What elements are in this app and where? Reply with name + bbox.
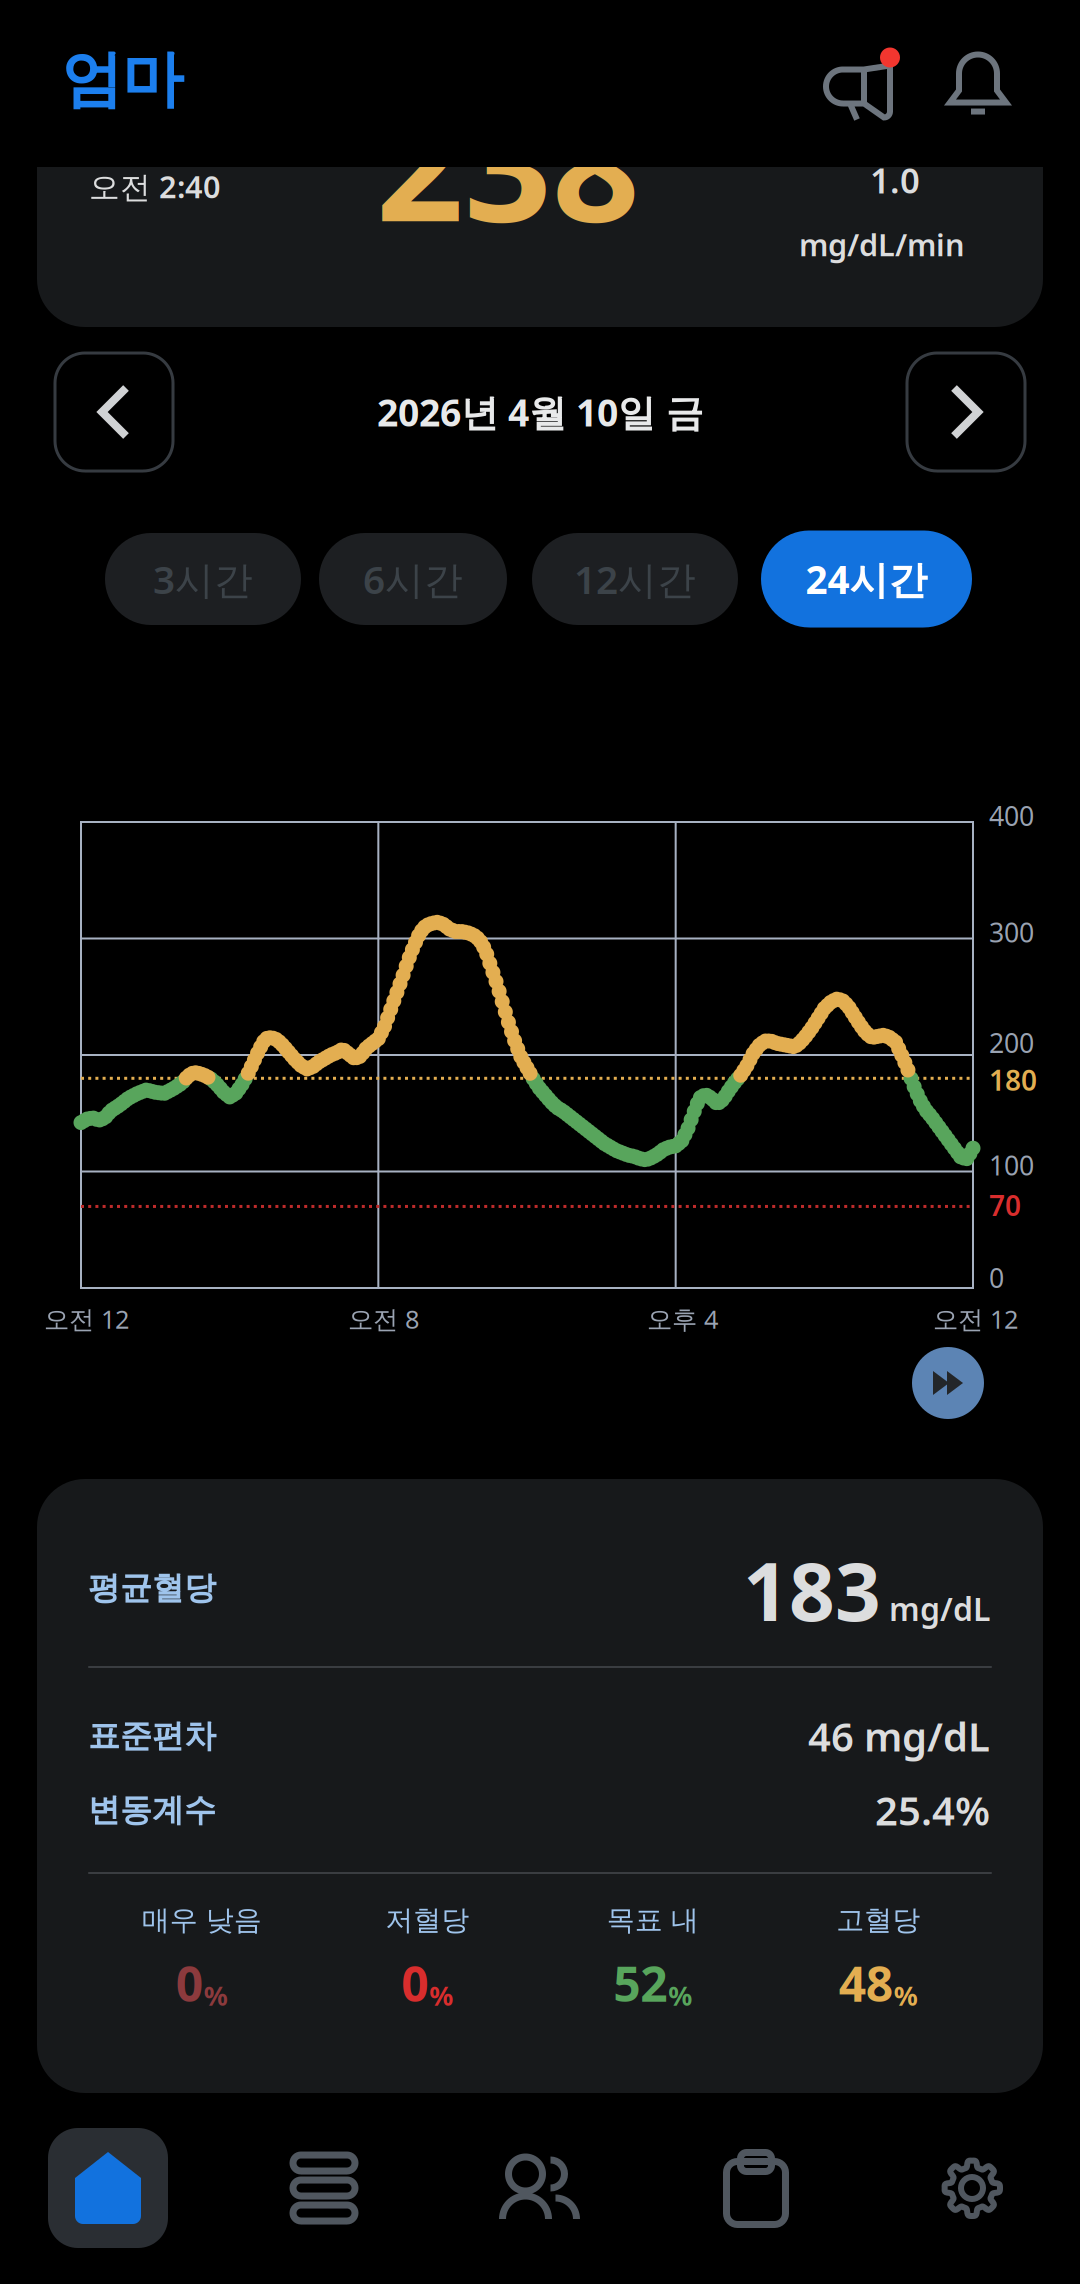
staticText: 238 [376,60,640,264]
button[interactable]: Previous day [55,353,173,471]
staticText: 0 [401,1951,428,2015]
button[interactable]: Jump to now [912,1347,984,1419]
staticText: 12시간 [574,553,696,605]
button[interactable]: Logbook [216,2118,432,2258]
staticText: mg/dL [889,1587,990,1630]
staticText: 매우 낮음 [142,1903,262,1937]
staticText: 6시간 [363,553,463,605]
staticText: 엄마 [61,42,183,117]
staticText: 저혈당 [385,1903,469,1937]
staticText: mg/dL/min [799,224,965,265]
staticText: 183 [743,1537,881,1643]
button[interactable]: 12시간 [532,533,738,625]
button[interactable]: Next day [907,353,1025,471]
staticText: 400 [989,798,1034,833]
button[interactable]: 3시간 [105,533,301,625]
staticText: 평균혈당 [88,1568,216,1608]
button[interactable]: Followers [432,2118,648,2258]
staticText: 오전 12 [44,1302,129,1336]
staticText: % [204,1978,228,2013]
staticText: 1.0 [870,157,920,203]
staticText: 52 [613,1951,667,2015]
button[interactable]: Announcements [826,47,900,119]
button[interactable]: Reports [648,2118,864,2258]
staticText: % [894,1978,918,2013]
staticText: 표준편차 [88,1716,216,1756]
staticText: 24시간 [805,553,927,605]
staticText: 100 [989,1147,1034,1183]
staticText: % [668,1978,692,2013]
staticText: 오전 2:40 [89,166,221,207]
staticText: 고혈당 [836,1903,920,1937]
staticText: 오전 12 [933,1302,1018,1336]
staticText: 0 [176,1951,203,2015]
staticText: 오후 4 [647,1302,718,1336]
staticText: 오전 8 [348,1302,419,1336]
button[interactable]: Settings [864,2118,1080,2258]
staticText: 200 [989,1025,1034,1060]
staticText: 2026년 4월 10일 금 [377,387,703,437]
staticText: 48 [839,1951,893,2015]
staticText: 목표 내 [607,1903,699,1937]
button[interactable]: Home [0,2118,216,2258]
button[interactable]: Notifications [946,50,1010,116]
staticText: % [429,1978,453,2013]
staticText: 25.4% [875,1783,990,1836]
staticText: 변동계수 [88,1790,216,1830]
staticText: 0 [989,1260,1004,1295]
button[interactable]: 6시간 [319,533,507,625]
staticText: 46 mg/dL [808,1709,990,1762]
staticText: 300 [989,914,1034,950]
staticText: 70 [989,1186,1021,1224]
button[interactable]: 24시간 [761,530,972,627]
staticText: 180 [989,1061,1037,1098]
staticText: 3시간 [153,553,253,605]
